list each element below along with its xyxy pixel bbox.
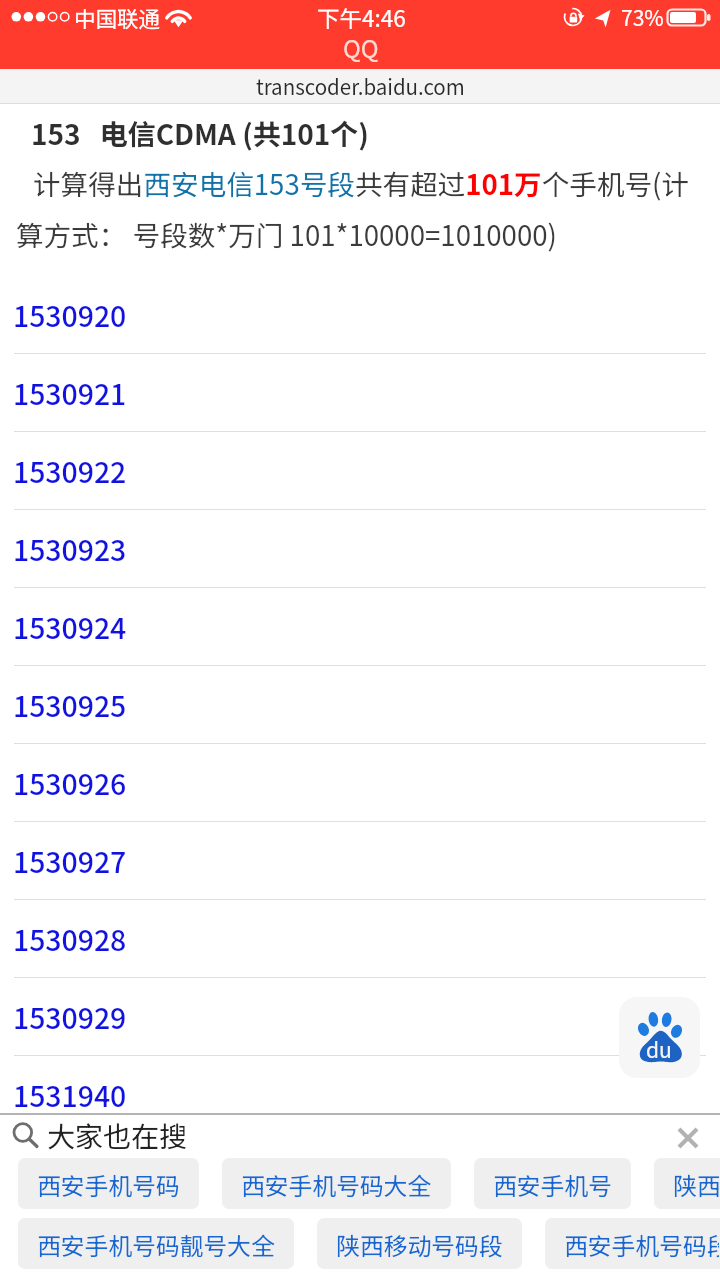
staticText: 西安手机号码靓号大全 [37,1227,275,1261]
staticText: 陕西移动号码段 [336,1227,503,1261]
button[interactable]: 1530923 [0,510,720,588]
staticText: 153 电信CDMA (共101个) [31,113,369,154]
staticText: 1531940 [13,1074,127,1115]
button[interactable]: 1530927 [0,822,720,900]
button[interactable]: 西安手机号 [474,1158,631,1209]
staticText: 1530924 [13,606,127,647]
staticText: 1530923 [13,528,127,569]
button[interactable]: 1531940 [0,1056,720,1134]
button[interactable]: 陕西移动号码段 [317,1218,522,1269]
staticText: 1530922 [13,450,127,491]
staticText: 1530929 [13,996,127,1037]
button[interactable]: 西安手机号码靓号大全 [18,1218,294,1269]
staticText: 西安手机号码段大全 [564,1227,719,1261]
button[interactable]: Baidu search [619,997,700,1078]
button[interactable]: 1530928 [0,900,720,978]
button[interactable]: 西安手机号码段大全 [545,1218,720,1269]
staticText: 1530928 [13,918,127,959]
staticText: 1530921 [13,372,127,413]
staticText: 中国联通 [74,2,161,33]
button[interactable]: 陕西移动号码段 [654,1158,720,1209]
staticText: 73% [621,2,664,32]
staticText: 大家也在搜 [47,1115,188,1156]
staticText: transcoder.baidu.com [256,71,465,101]
staticText: 西安手机号 [493,1167,612,1201]
button[interactable]: 1530924 [0,588,720,666]
staticText: 算方式： 号段数*万门 101*10000=1010000) [16,214,557,254]
staticText: 1530925 [13,684,127,725]
button[interactable]: 1530921 [0,354,720,432]
button[interactable]: 1530922 [0,432,720,510]
button[interactable]: 1530929 [0,978,720,1056]
button[interactable]: 西安手机号码大全 [222,1158,451,1209]
button[interactable]: Close suggestions [671,1121,705,1155]
staticText: 下午4:46 [317,1,406,34]
staticText: 1530926 [13,762,127,803]
staticText: QQ [343,30,379,65]
staticText: du [646,1034,672,1064]
staticText: 1530920 [13,294,127,335]
button[interactable]: 1530925 [0,666,720,744]
button[interactable]: 1530926 [0,744,720,822]
staticText: 1530927 [13,840,127,881]
staticText: 陕西移动号码段 [673,1167,719,1201]
staticText: 西安手机号码 [37,1167,180,1201]
button[interactable]: 西安手机号码 [18,1158,199,1209]
staticText: 西安手机号码大全 [241,1167,432,1201]
staticText: 计算得出西安电信153号段共有超过101万个手机号(计 [33,163,689,203]
button[interactable]: 1530920 [0,276,720,354]
